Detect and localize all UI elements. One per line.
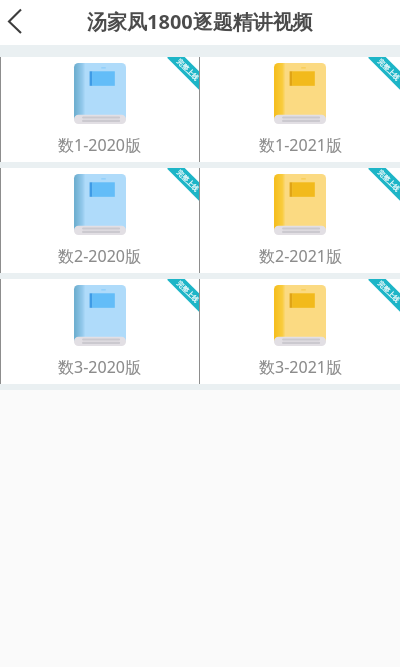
button[interactable]: 数3-2020版 [0, 279, 199, 384]
staticText: 数1-2020版 [58, 134, 141, 156]
staticText: 完整上线 [175, 168, 199, 194]
staticText: 数3-2021版 [259, 356, 342, 378]
button[interactable]: 数1-2021版 [200, 57, 400, 162]
staticText: 完整上线 [376, 279, 400, 305]
staticText: 完整上线 [376, 168, 400, 194]
staticText: 完整上线 [175, 279, 199, 305]
button[interactable]: 数1-2020版 [0, 57, 199, 162]
staticText: 完整上线 [175, 57, 199, 83]
button[interactable]: 数2-2021版 [200, 168, 400, 273]
button[interactable]: Back [0, 0, 38, 45]
staticText: 数1-2021版 [259, 134, 342, 156]
staticText: 汤家凤1800逐题精讲视频 [87, 8, 313, 35]
staticText: 数3-2020版 [58, 356, 141, 378]
staticText: 数2-2020版 [58, 245, 141, 267]
staticText: 数2-2021版 [259, 245, 342, 267]
button[interactable]: 数3-2021版 [200, 279, 400, 384]
staticText: 完整上线 [376, 57, 400, 83]
button[interactable]: 数2-2020版 [0, 168, 199, 273]
